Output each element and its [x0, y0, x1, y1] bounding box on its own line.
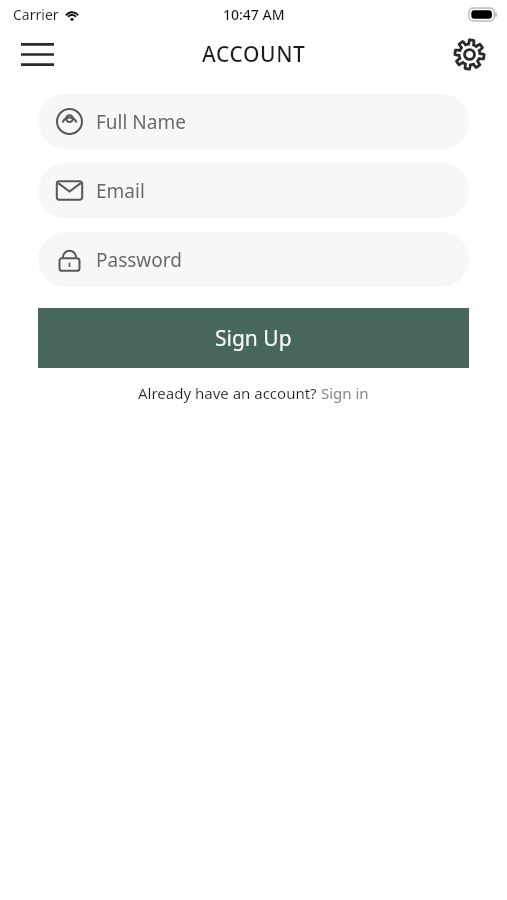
staticText: Sign Up — [215, 324, 292, 353]
button[interactable]: Sign Up — [38, 308, 469, 368]
button[interactable]: Sign in — [321, 383, 369, 403]
staticText: Email — [96, 178, 145, 204]
staticText: 10:47 AM — [223, 5, 285, 24]
button[interactable]: Settings — [446, 31, 492, 77]
staticText: Already have an account? — [138, 383, 321, 403]
staticText: Full Name — [96, 109, 186, 135]
staticText: Carrier — [13, 5, 59, 24]
button[interactable]: Email — [38, 163, 469, 218]
staticText: ACCOUNT — [202, 40, 306, 69]
button[interactable]: Menu — [14, 31, 60, 77]
staticText: Sign in — [321, 383, 369, 403]
staticText: Password — [96, 247, 182, 273]
button[interactable]: Full Name — [38, 94, 469, 149]
button[interactable]: Password — [38, 232, 469, 287]
